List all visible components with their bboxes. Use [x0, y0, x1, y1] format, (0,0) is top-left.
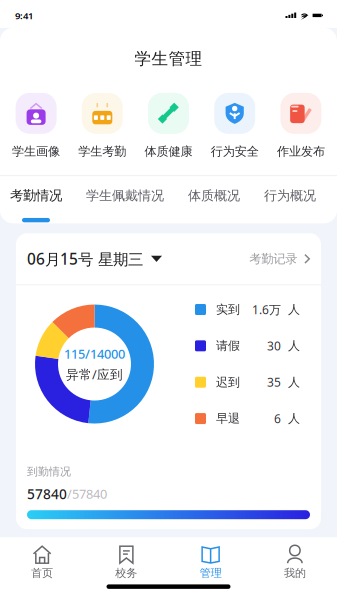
staticText: 请假 — [216, 338, 240, 353]
button[interactable]: 行为概况 — [264, 187, 316, 222]
staticText: 人 — [288, 338, 300, 353]
staticText: 06月15号 星期三 — [27, 248, 143, 269]
staticText: 9:41 — [15, 9, 33, 22]
staticText: 人 — [288, 411, 300, 426]
button[interactable]: 学生画像 — [3, 93, 69, 159]
button[interactable]: 学生佩戴情况 — [86, 187, 164, 222]
button[interactable]: 我的 — [253, 545, 337, 580]
staticText: 学生画像 — [12, 144, 60, 159]
staticText: 我的 — [284, 566, 306, 580]
staticText: 115/14000 — [64, 345, 125, 363]
staticText: 学生佩戴情况 — [86, 187, 164, 204]
staticText: 首页 — [31, 566, 53, 580]
staticText: 异常/应到 — [66, 366, 123, 383]
staticText: 人 — [288, 375, 300, 390]
button[interactable]: 行为安全 — [202, 93, 268, 159]
button[interactable]: 首页 — [0, 545, 84, 580]
staticText: 考勤记录 — [249, 251, 297, 267]
staticText: 学生管理 — [134, 48, 202, 69]
button[interactable]: 体质概况 — [188, 187, 240, 222]
staticText: 体质健康 — [144, 144, 192, 159]
staticText: 到勤情况 — [27, 465, 71, 478]
button[interactable]: 考勤记录 — [249, 251, 310, 267]
staticText: 作业发布 — [277, 144, 325, 159]
button[interactable]: 管理 — [168, 545, 253, 580]
staticText: 行为概况 — [264, 187, 316, 204]
button[interactable]: 体质健康 — [135, 93, 202, 159]
button[interactable]: 校务 — [84, 545, 168, 580]
staticText: 早退 — [216, 411, 240, 426]
staticText: 人 — [288, 302, 300, 317]
staticText: 体质概况 — [188, 187, 240, 204]
staticText: 30 — [267, 338, 281, 354]
staticText: 考勤情况 — [10, 187, 62, 204]
button[interactable]: 学生考勤 — [69, 93, 135, 159]
staticText: 迟到 — [216, 375, 240, 390]
staticText: 实到 — [216, 302, 240, 317]
staticText: 校务 — [115, 566, 137, 580]
staticText: 6 — [274, 410, 281, 427]
staticText: 学生考勤 — [78, 144, 126, 159]
staticText: /57840 — [67, 485, 107, 502]
button[interactable]: 作业发布 — [268, 93, 334, 159]
button[interactable]: 考勤情况 — [10, 187, 62, 222]
staticText: 行为安全 — [211, 144, 259, 159]
staticText: 35 — [267, 374, 281, 390]
staticText: 57840 — [27, 484, 67, 503]
staticText: 管理 — [200, 566, 222, 580]
staticText: 1.6万 — [252, 301, 281, 318]
